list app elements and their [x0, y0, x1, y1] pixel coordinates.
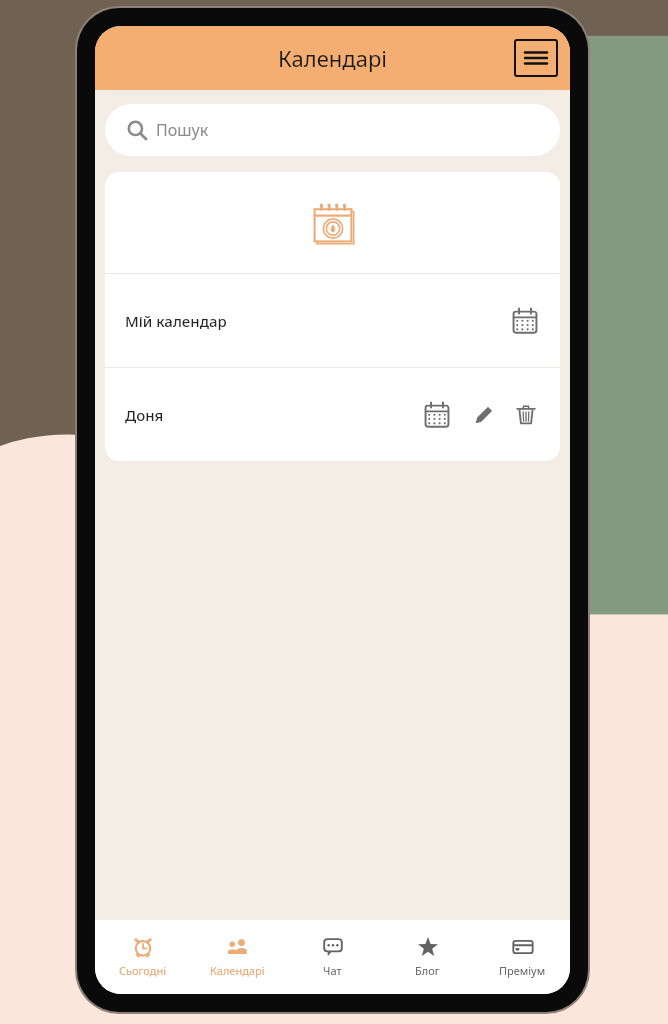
button[interactable]: Menu	[514, 39, 558, 77]
staticText: Преміум	[499, 963, 546, 978]
staticText: Календарі	[210, 963, 265, 978]
staticText: Чат	[323, 963, 342, 978]
staticText: Блог	[415, 963, 440, 978]
staticText: Календарі	[278, 43, 387, 73]
button[interactable]: Доня	[105, 368, 560, 461]
button[interactable]: Open calendar	[508, 304, 542, 338]
button[interactable]: Календарі	[190, 920, 285, 994]
button[interactable]: Сьогодні	[95, 920, 190, 994]
button[interactable]: Пошук	[105, 104, 560, 156]
button[interactable]: Преміум	[475, 920, 570, 994]
staticText: Сьогодні	[119, 963, 166, 978]
staticText: Мій календар	[125, 311, 227, 331]
button[interactable]: Delete	[510, 399, 542, 431]
button[interactable]: Edit	[466, 399, 498, 431]
button[interactable]: Чат	[285, 920, 380, 994]
button[interactable]: Open calendar	[420, 398, 454, 432]
staticText: Доня	[125, 405, 164, 425]
button[interactable]: Мій календар	[105, 274, 560, 367]
button[interactable]: Блог	[380, 920, 475, 994]
staticText: Пошук	[156, 119, 209, 141]
button[interactable]: Add calendar	[307, 197, 359, 249]
